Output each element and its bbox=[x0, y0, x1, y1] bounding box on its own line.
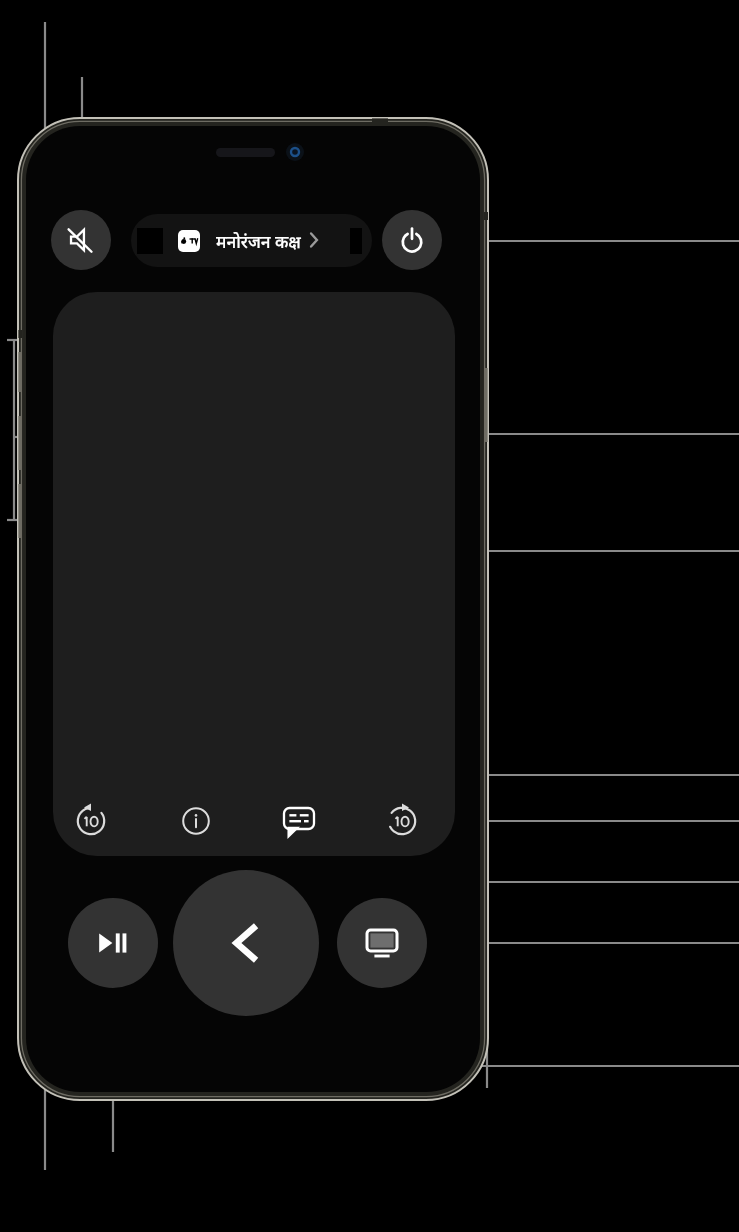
button[interactable]: Play or pause bbox=[68, 898, 158, 988]
staticText: मनोरंजन कक्ष bbox=[216, 230, 301, 253]
button[interactable]: Back bbox=[173, 870, 319, 1016]
button[interactable]: Closed captions bbox=[273, 795, 325, 847]
button[interactable]: Mute bbox=[51, 210, 111, 270]
button[interactable]: Info bbox=[172, 797, 220, 845]
button[interactable]: TV bbox=[337, 898, 427, 988]
button[interactable]: Power bbox=[382, 210, 442, 270]
button[interactable]: Skip forward 10 seconds bbox=[376, 795, 428, 847]
button[interactable]: Skip back 10 seconds bbox=[65, 795, 117, 847]
button[interactable]: Entertainment Room bbox=[131, 214, 372, 267]
